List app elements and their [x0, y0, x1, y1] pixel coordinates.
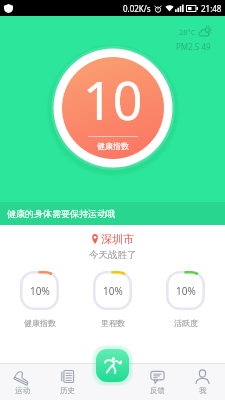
- button[interactable]: 历史: [45, 363, 90, 400]
- button[interactable]: 10%: [20, 271, 59, 328]
- button[interactable]: 健康的身体需要保持运动哦: [0, 202, 225, 225]
- staticText: 活跃度: [174, 318, 198, 328]
- staticText: 历史: [60, 386, 75, 395]
- staticText: 0.02K/s: [123, 3, 151, 14]
- staticText: 10%: [103, 284, 123, 298]
- staticText: 深圳市: [101, 232, 134, 246]
- staticText: PM2.5 49: [176, 41, 211, 52]
- staticText: 10: [83, 64, 143, 135]
- staticText: 10%: [30, 284, 50, 298]
- staticText: 运动: [15, 386, 30, 395]
- button[interactable]: 我: [180, 363, 225, 400]
- button[interactable]: 运动: [0, 363, 45, 400]
- staticText: 10%: [176, 284, 196, 298]
- staticText: 健康指数: [24, 318, 56, 328]
- staticText: 里程数: [101, 318, 125, 328]
- button[interactable]: 反馈: [135, 363, 180, 400]
- button[interactable]: 10%: [93, 271, 132, 328]
- staticText: 今天战胜了: [89, 249, 137, 261]
- staticText: 反馈: [150, 386, 165, 395]
- staticText: 健康指数: [97, 141, 129, 151]
- staticText: 我: [199, 386, 207, 395]
- staticText: 健康的身体需要保持运动哦: [7, 208, 115, 219]
- staticText: 28°C: [179, 27, 196, 37]
- staticText: 21:48: [201, 3, 222, 14]
- button[interactable]: Start running: [96, 349, 129, 382]
- button[interactable]: 10%: [166, 271, 205, 328]
